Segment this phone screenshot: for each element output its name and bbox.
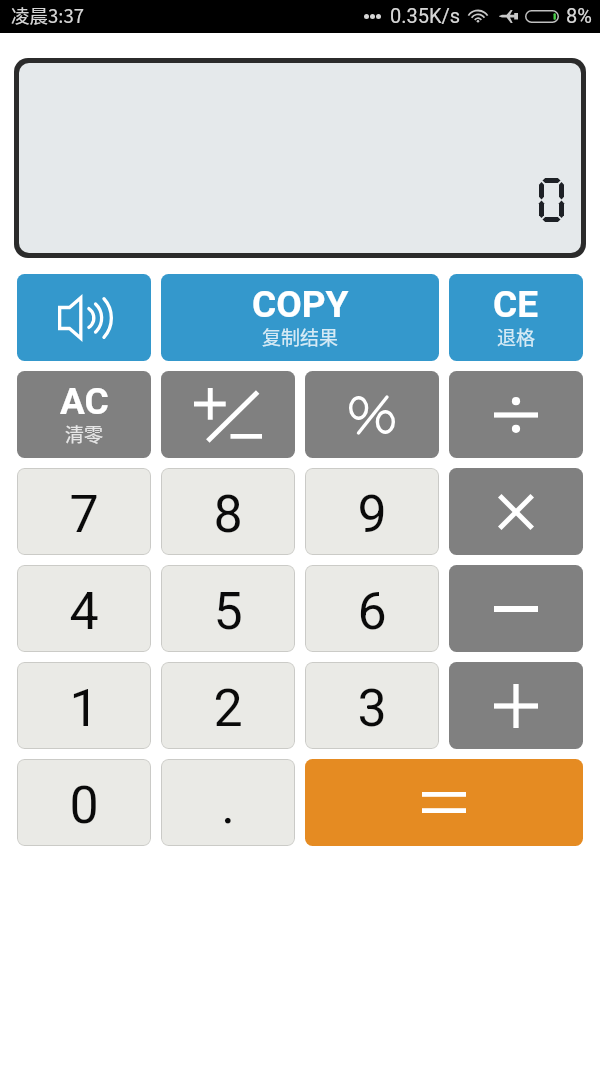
staticText: 8: [213, 484, 243, 545]
button[interactable]: Plus minus: [161, 371, 295, 458]
staticText: 退格: [497, 323, 536, 351]
button[interactable]: Sound: [17, 274, 151, 361]
staticText: .: [221, 775, 235, 836]
staticText: 9: [357, 484, 387, 545]
button[interactable]: 7: [17, 468, 151, 555]
staticText: CE: [493, 283, 539, 326]
button[interactable]: 5: [161, 565, 295, 652]
staticText: 0: [69, 775, 99, 836]
staticText: 5: [213, 581, 243, 642]
staticText: 凌晨3:37: [11, 2, 84, 29]
staticText: 清零: [65, 420, 104, 448]
staticText: 8%: [566, 4, 592, 27]
button[interactable]: 9: [305, 468, 439, 555]
staticText: 2: [213, 678, 243, 739]
staticText: 6: [357, 581, 387, 642]
button[interactable]: Plus: [449, 662, 583, 749]
staticText: 复制结果: [262, 323, 339, 351]
button[interactable]: 4: [17, 565, 151, 652]
staticText: 4: [69, 581, 99, 642]
staticText: 1: [69, 678, 99, 739]
staticText: 0.35K/s: [390, 4, 461, 27]
button[interactable]: 2: [161, 662, 295, 749]
button[interactable]: 1: [17, 662, 151, 749]
button[interactable]: .: [161, 759, 295, 846]
button[interactable]: COPY: [161, 274, 439, 361]
button[interactable]: 8: [161, 468, 295, 555]
button[interactable]: 3: [305, 662, 439, 749]
button[interactable]: Multiply: [449, 468, 583, 555]
button[interactable]: AC: [17, 371, 151, 458]
button[interactable]: 0: [17, 759, 151, 846]
staticText: 3: [357, 678, 387, 739]
button[interactable]: Minus: [449, 565, 583, 652]
staticText: 7: [69, 484, 99, 545]
button[interactable]: 6: [305, 565, 439, 652]
button[interactable]: Percent: [305, 371, 439, 458]
staticText: COPY: [252, 283, 349, 326]
button[interactable]: CE: [449, 274, 583, 361]
staticText: AC: [60, 380, 109, 423]
button[interactable]: Divide: [449, 371, 583, 458]
button[interactable]: Equals: [305, 759, 583, 846]
